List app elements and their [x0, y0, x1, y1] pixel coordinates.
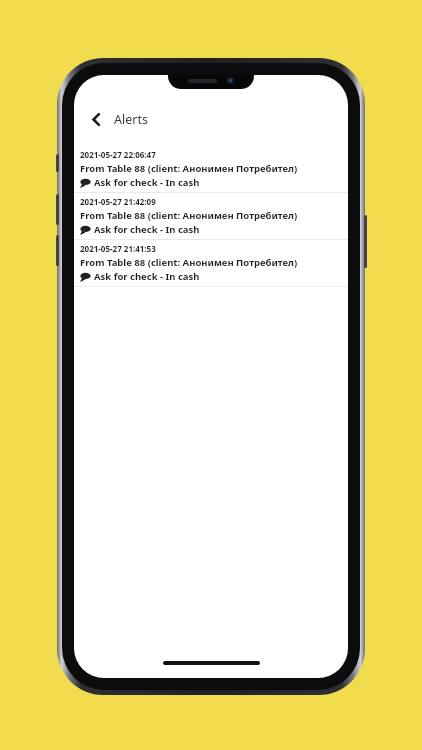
staticText: 2021-05-27 21:41:53	[80, 243, 156, 254]
staticText: Ask for check - In cash	[94, 223, 200, 236]
staticText: From Table 88 (client: Анонимен Потребит…	[80, 209, 298, 222]
staticText: Ask for check - In cash	[94, 270, 200, 283]
staticText: 2021-05-27 22:06:47	[80, 149, 156, 160]
staticText: Ask for check - In cash	[94, 176, 200, 189]
button[interactable]: Back	[81, 104, 111, 134]
staticText: Alerts	[114, 111, 148, 128]
button[interactable]: 2021-05-27 22:06:47	[74, 146, 348, 193]
button[interactable]: 2021-05-27 21:42:09	[74, 193, 348, 240]
staticText: 2021-05-27 21:42:09	[80, 196, 156, 207]
staticText: From Table 88 (client: Анонимен Потребит…	[80, 162, 298, 175]
button[interactable]: 2021-05-27 21:41:53	[74, 240, 348, 287]
staticText: From Table 88 (client: Анонимен Потребит…	[80, 256, 298, 269]
